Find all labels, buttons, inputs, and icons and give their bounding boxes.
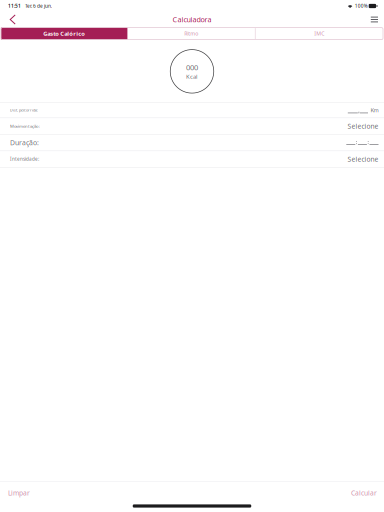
staticText: Ter. 6 de jun.: [21, 3, 52, 9]
staticText: 000: [186, 62, 198, 72]
button[interactable]: Dist. percorrida:: [0, 103, 384, 118]
staticText: Duração:: [10, 138, 39, 147]
button[interactable]: Calcular: [343, 482, 384, 500]
staticText: Ritmo: [184, 30, 198, 37]
staticText: Selecione: [347, 122, 378, 131]
staticText: 100%: [353, 3, 369, 9]
staticText: Intensidade:: [10, 156, 39, 162]
staticText: Limpar: [8, 489, 30, 497]
button[interactable]: Voltar: [3, 12, 22, 27]
staticText: Selecione: [347, 155, 378, 163]
button[interactable]: IMC: [256, 28, 383, 40]
staticText: Gasto Calórico: [43, 30, 85, 37]
staticText: IMC: [314, 30, 324, 37]
button[interactable]: Menu: [366, 13, 381, 26]
button[interactable]: Intensidade:: [0, 151, 384, 168]
staticText: 11:51: [8, 3, 21, 9]
staticText: Calcular: [351, 489, 377, 497]
staticText: Kcal: [186, 72, 198, 80]
staticText: Km: [370, 106, 378, 114]
staticText: Calculadora: [172, 15, 211, 24]
button[interactable]: Movimentação:: [0, 118, 384, 135]
button[interactable]: Ritmo: [127, 28, 255, 40]
button[interactable]: Limpar: [0, 482, 38, 500]
staticText: Dist. percorrida:: [10, 108, 38, 113]
button[interactable]: Duração:: [0, 135, 384, 151]
staticText: Movimentação:: [10, 123, 40, 129]
button[interactable]: Gasto Calórico: [1, 28, 127, 40]
